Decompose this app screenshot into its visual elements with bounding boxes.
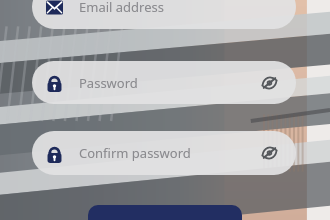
button[interactable]: Email address (32, 0, 296, 29)
button[interactable]: Show password (256, 140, 282, 166)
button[interactable]: Show password (256, 70, 282, 96)
staticText: Password (79, 74, 138, 92)
button[interactable]: SIGN UP (88, 205, 242, 220)
staticText: Confirm password (79, 144, 191, 162)
button[interactable]: Password (32, 61, 296, 104)
button[interactable]: Confirm password (32, 131, 296, 175)
staticText: Email address (79, 0, 164, 16)
